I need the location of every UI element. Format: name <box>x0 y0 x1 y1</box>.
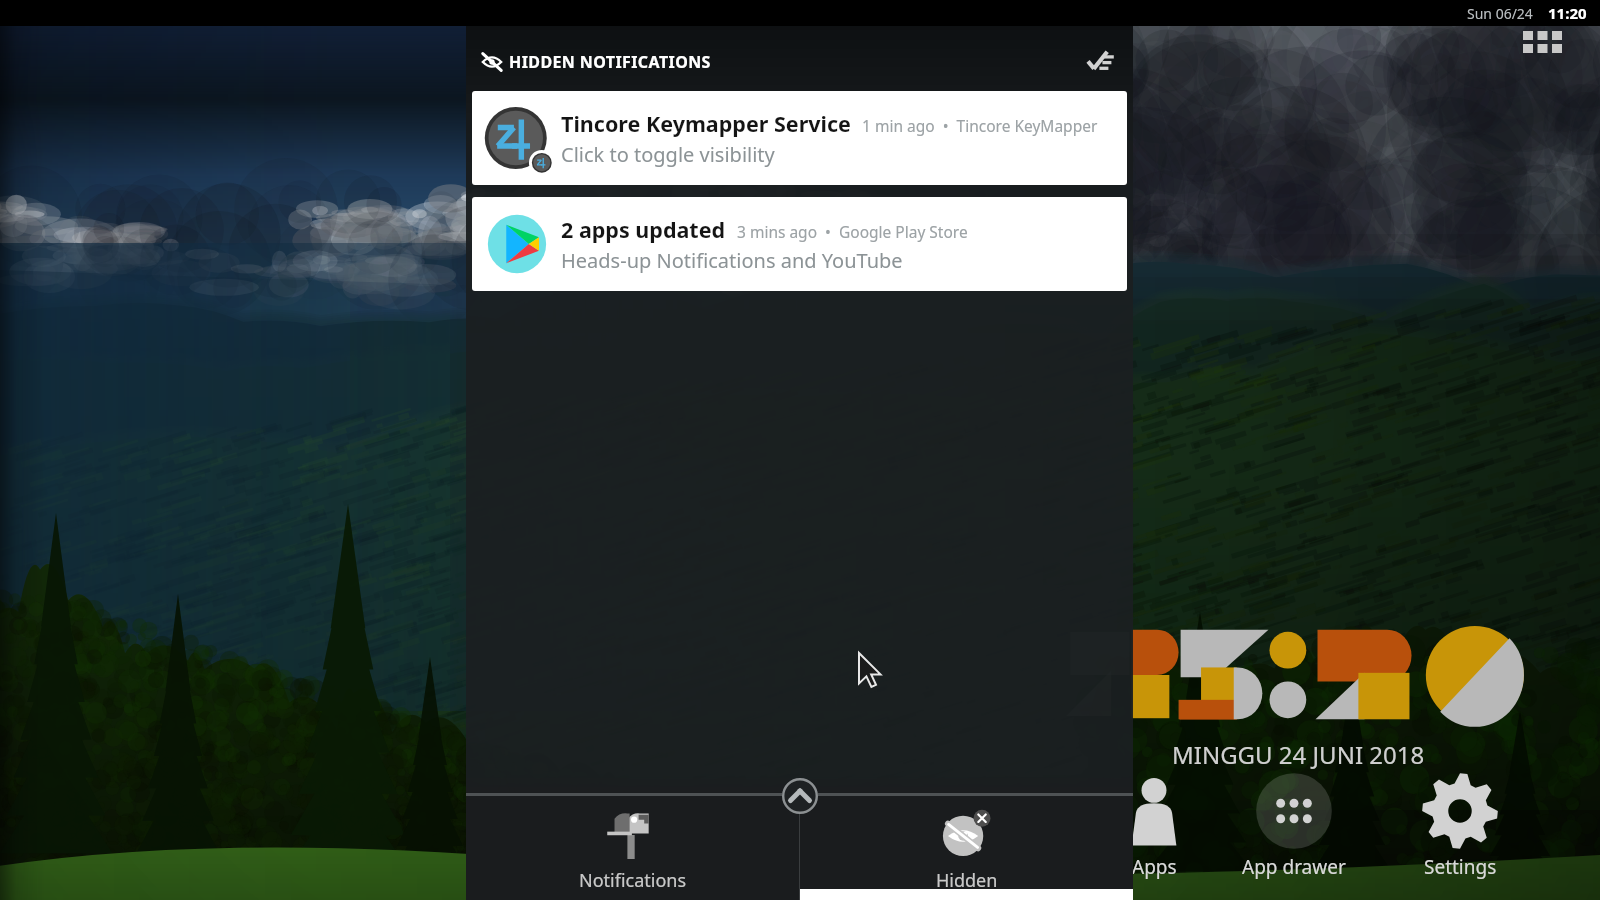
staticText: Sun 06/24 <box>1467 4 1533 23</box>
button[interactable]: Notifications <box>466 796 799 900</box>
button[interactable]: Tincore Keymapper Service <box>472 91 1127 185</box>
staticText: 3 mins ago • Google Play Store <box>737 221 968 242</box>
staticText: 1 min ago • Tincore KeyMapper <box>862 115 1098 136</box>
button[interactable]: App drawer <box>1232 768 1356 880</box>
staticText: Notifications <box>579 868 687 893</box>
staticText: 11:20 <box>1548 3 1587 23</box>
staticText: HIDDEN NOTIFICATIONS <box>509 51 711 73</box>
staticText: Settings <box>1424 854 1497 880</box>
button[interactable]: Collapse panel <box>782 778 818 814</box>
staticText: 2 apps updated <box>561 215 726 244</box>
button[interactable]: Clear all notifications <box>1079 41 1121 83</box>
staticText: MINGGU 24 JUNI 2018 <box>1172 738 1425 771</box>
staticText: Tincore Keymapper Service <box>561 109 851 138</box>
staticText: Hidden <box>936 868 998 893</box>
staticText: Click to toggle visibility <box>561 141 775 168</box>
staticText: App drawer <box>1242 854 1346 880</box>
staticText: Apps <box>1132 854 1177 880</box>
button[interactable]: 2 apps updated <box>472 197 1127 291</box>
button[interactable]: Hidden <box>800 796 1133 900</box>
button[interactable]: Settings <box>1398 768 1522 880</box>
button[interactable]: Apps <box>1092 768 1216 880</box>
staticText: Heads-up Notifications and YouTube <box>561 247 903 274</box>
